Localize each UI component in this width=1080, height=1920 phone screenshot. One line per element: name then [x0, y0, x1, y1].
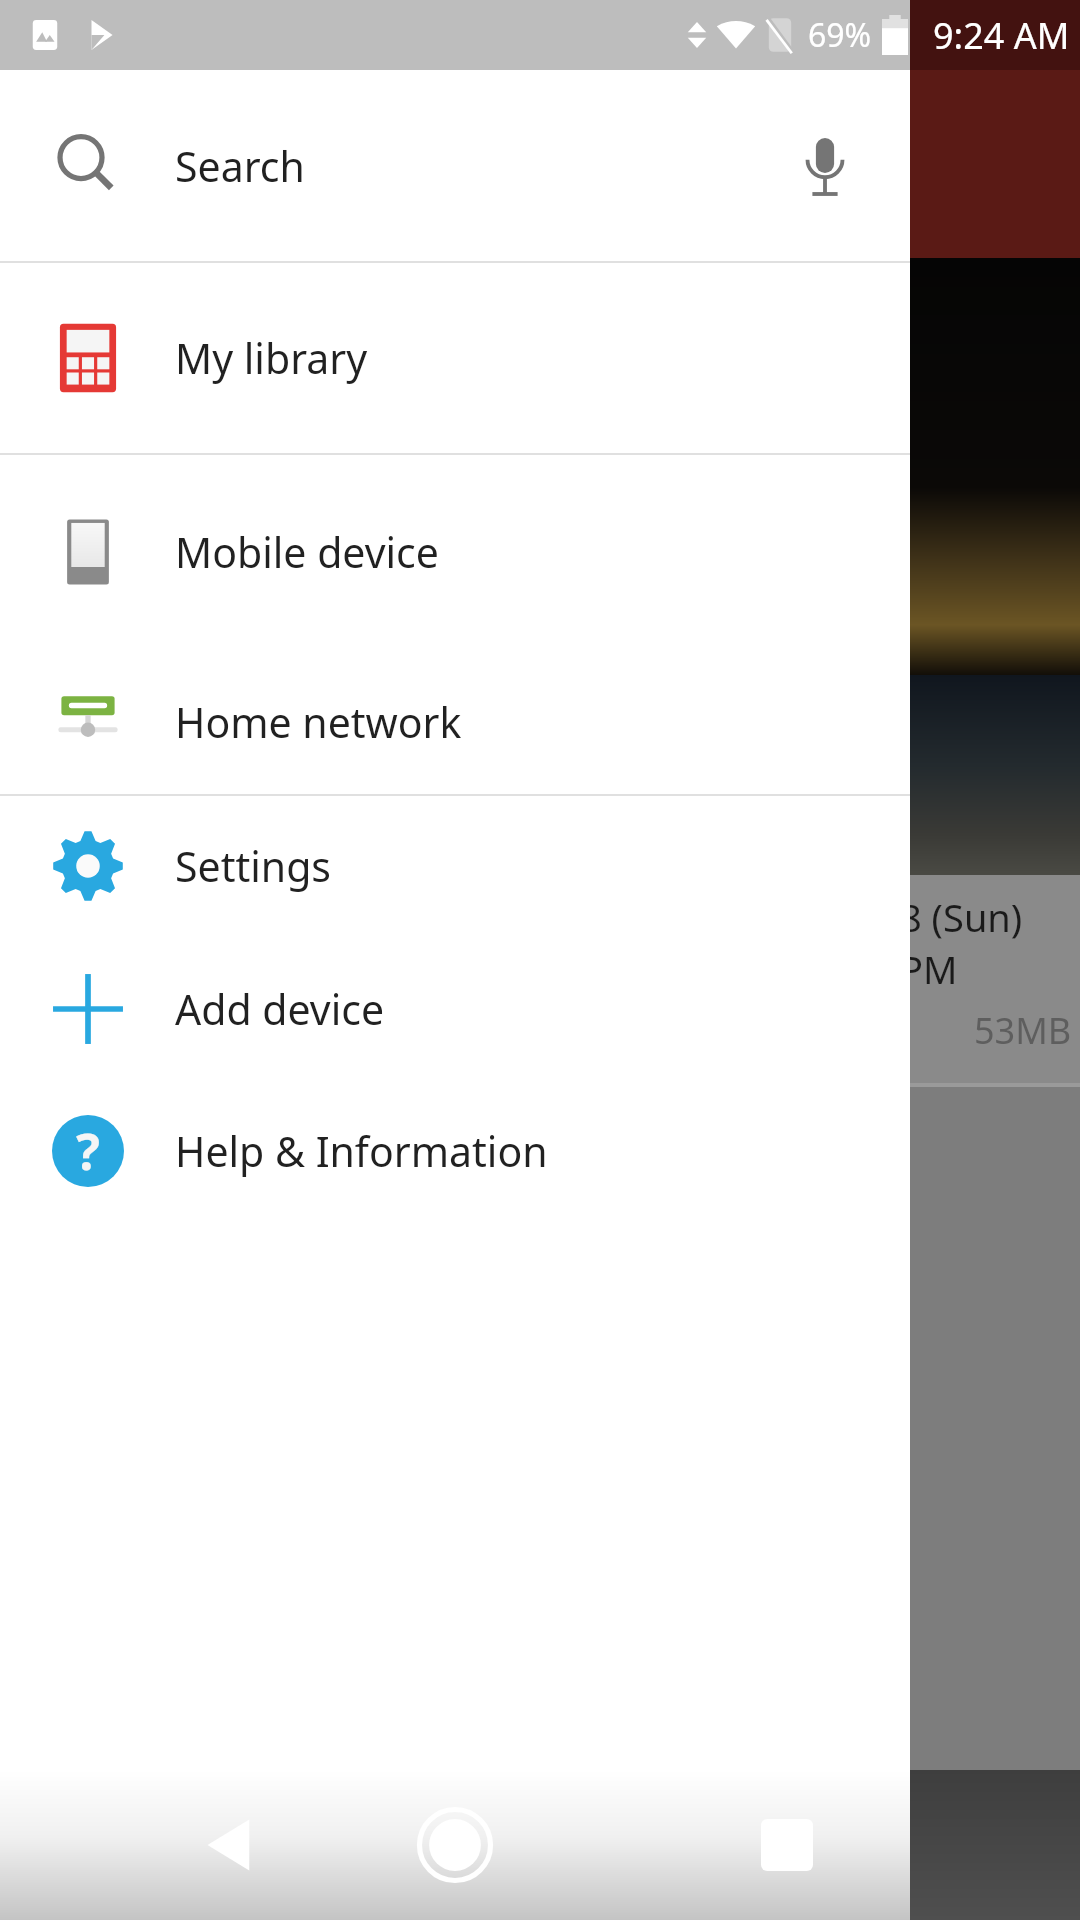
other: Add device [50, 971, 126, 1047]
other: Search [53, 131, 123, 201]
staticText: 9:24 AM [933, 11, 1070, 60]
button[interactable]: Add device [0, 936, 910, 1081]
staticText: Help & Information [175, 1123, 548, 1179]
staticText: 69% [808, 13, 872, 57]
staticText: Settings [175, 838, 332, 894]
button[interactable]: Mobile device [0, 455, 910, 649]
staticText: Search [175, 138, 305, 194]
button[interactable]: Help and Information [0, 1081, 910, 1221]
staticText: 8 (Sun) [900, 891, 1023, 943]
staticText: PM [900, 943, 958, 995]
other: Settings [50, 828, 126, 904]
button[interactable]: My library [0, 263, 910, 453]
button[interactable]: Home network [0, 649, 910, 794]
staticText: 53MB [974, 1006, 1072, 1055]
other: Voice search [790, 131, 860, 201]
other: Help and Information [52, 1115, 124, 1187]
staticText: Mobile device [175, 524, 439, 580]
staticText: Add device [175, 981, 385, 1037]
button[interactable]: Settings [0, 796, 910, 936]
other: Mobile device [52, 516, 124, 588]
other: My library [52, 322, 124, 394]
staticText: My library [175, 330, 368, 386]
button[interactable]: Back [185, 1797, 281, 1893]
staticText: ? [76, 1117, 100, 1185]
button[interactable]: Recent apps [739, 1797, 835, 1893]
button[interactable]: Home [400, 1790, 510, 1900]
other: Home network [50, 684, 126, 760]
staticText: Home network [175, 694, 462, 750]
button[interactable]: Search [0, 70, 910, 261]
